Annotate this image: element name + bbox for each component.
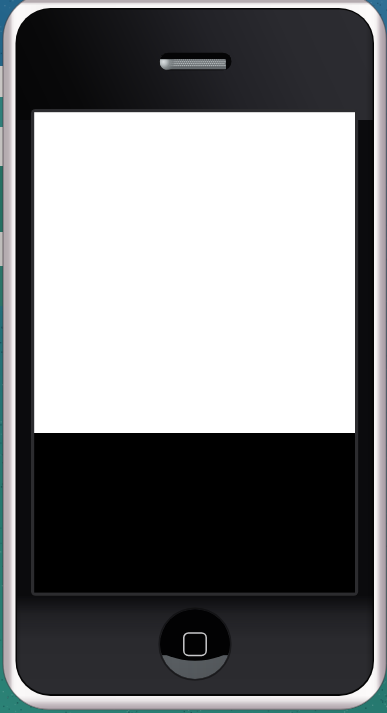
button[interactable]: Screen [34,112,355,593]
button[interactable]: Home [160,609,230,679]
